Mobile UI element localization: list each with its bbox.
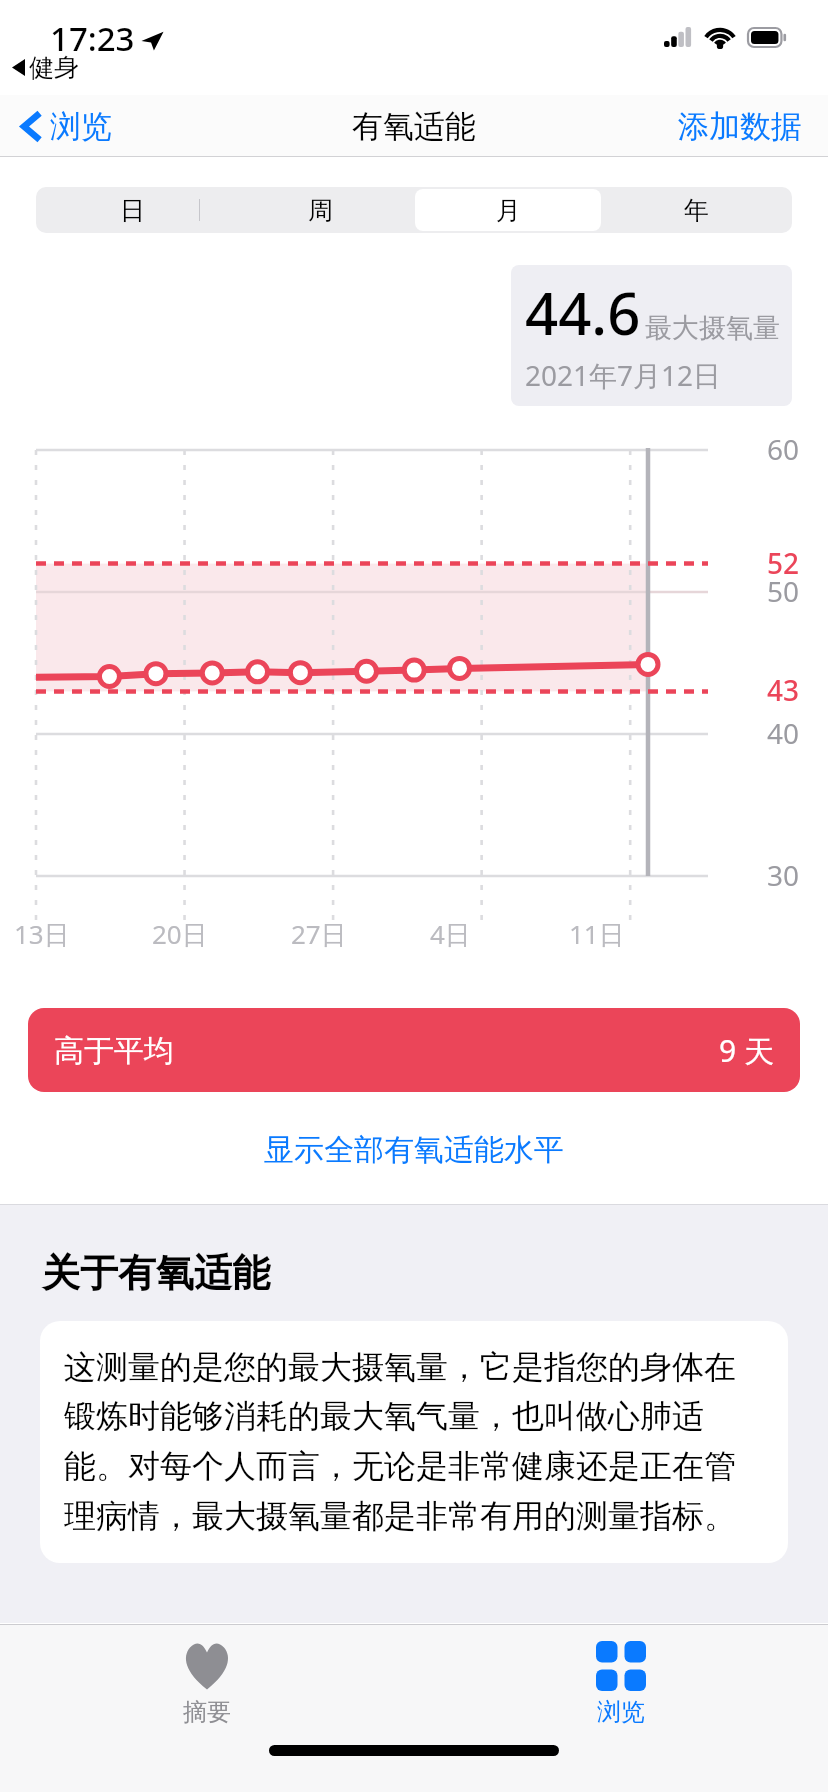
staticText: 13日: [14, 916, 70, 952]
staticText: 60: [767, 430, 800, 468]
other: 浏览: [596, 1641, 646, 1691]
staticText: 高于平均: [54, 1032, 174, 1070]
staticText: 浏览: [50, 107, 112, 146]
button[interactable]: 月: [415, 189, 601, 231]
staticText: 关于有氧适能: [42, 1249, 270, 1297]
staticText: 最大摄氧量: [645, 311, 780, 345]
button[interactable]: 高于平均: [28, 1008, 800, 1092]
staticText: 月: [496, 195, 521, 226]
staticText: 40: [767, 714, 800, 752]
staticText: 50: [767, 572, 800, 610]
other: 摘要: [182, 1641, 232, 1691]
staticText: 日: [120, 195, 145, 226]
staticText: 4日: [430, 916, 471, 952]
staticText: 这测量的是您的最大摄氧量，它是指您的身体在锻炼时能够消耗的最大氧气量，也叫做心肺…: [64, 1347, 764, 1537]
staticText: 添加数据: [678, 107, 802, 146]
staticText: 52: [767, 544, 800, 582]
button[interactable]: 浏览: [414, 1625, 828, 1745]
staticText: 浏览: [597, 1697, 645, 1727]
staticText: 显示全部有氧适能水平: [264, 1131, 564, 1169]
staticText: 44.6: [525, 273, 641, 352]
staticText: 周: [308, 195, 333, 226]
button[interactable]: 摘要: [0, 1625, 414, 1745]
staticText: 30: [767, 856, 800, 894]
button[interactable]: 添加数据: [672, 101, 808, 152]
button[interactable]: 浏览: [16, 99, 118, 154]
staticText: 17:23: [50, 16, 135, 61]
staticText: 摘要: [183, 1697, 231, 1727]
staticText: 2021年7月12日: [525, 356, 722, 394]
staticText: 27日: [291, 916, 347, 952]
staticText: 9 天: [719, 1030, 774, 1071]
staticText: 年: [684, 195, 709, 226]
staticText: 43: [767, 671, 800, 709]
button[interactable]: 周: [227, 189, 413, 231]
staticText: 11日: [569, 916, 625, 952]
button[interactable]: 年: [603, 189, 789, 231]
staticText: 有氧适能: [352, 107, 476, 146]
button[interactable]: 显示全部有氧适能水平: [0, 1126, 828, 1174]
staticText: 20日: [152, 916, 208, 952]
staticText: 健身: [29, 52, 79, 83]
button[interactable]: 日: [39, 189, 225, 231]
